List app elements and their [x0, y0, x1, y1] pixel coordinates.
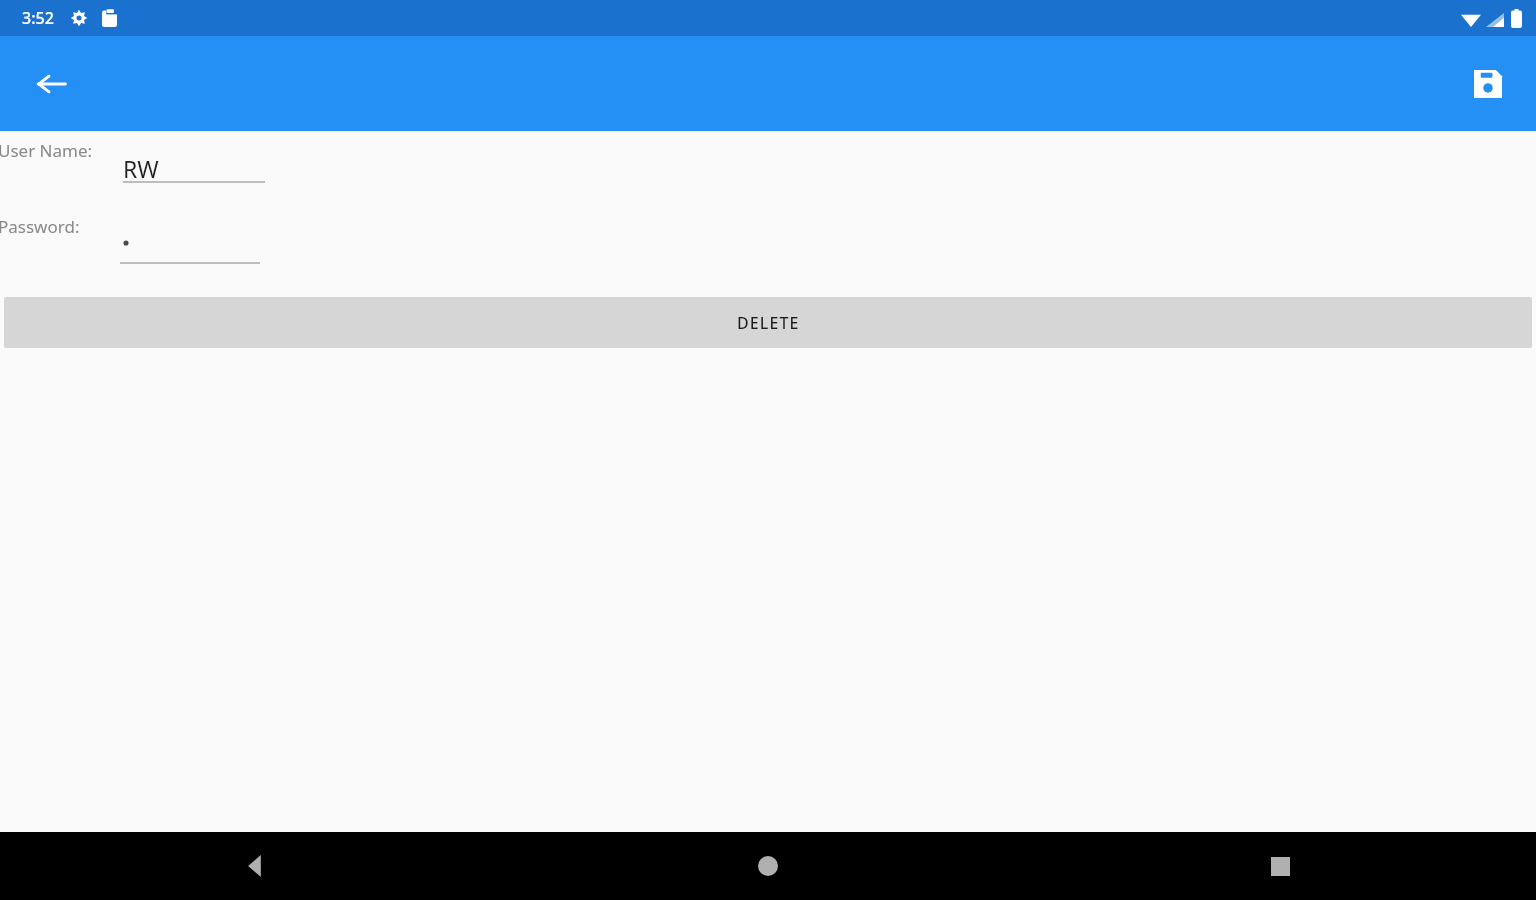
- staticText: Password:: [0, 215, 80, 238]
- button[interactable]: Save: [1456, 52, 1520, 116]
- button[interactable]: Home: [512, 832, 1024, 900]
- button[interactable]: Recents: [1024, 832, 1536, 900]
- staticText: RW: [123, 153, 159, 184]
- staticText: 3:52: [22, 7, 54, 29]
- staticText: User Name:: [0, 139, 93, 162]
- button[interactable]: Back: [0, 832, 512, 900]
- button[interactable]: DELETE: [4, 297, 1532, 348]
- staticText: DELETE: [737, 312, 800, 334]
- button[interactable]: Back: [20, 52, 84, 116]
